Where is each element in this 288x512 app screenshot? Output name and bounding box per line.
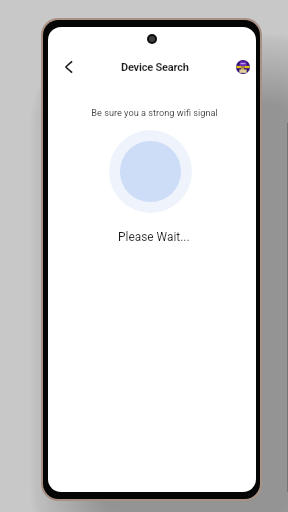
staticText: Please Wait... xyxy=(118,230,190,244)
staticText: Device Search xyxy=(121,61,189,74)
button[interactable]: Profile xyxy=(236,60,250,74)
staticText: Be sure you a strong wifi signal xyxy=(91,107,218,118)
button[interactable]: Back xyxy=(58,56,80,78)
